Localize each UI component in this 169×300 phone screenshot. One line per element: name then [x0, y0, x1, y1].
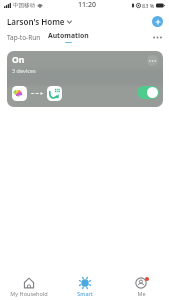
- button[interactable]: Tap-to-Run: [7, 33, 41, 42]
- staticText: On: [12, 54, 25, 66]
- staticText: Me: [137, 290, 146, 297]
- button[interactable]: Toggle automation: [137, 86, 159, 99]
- button[interactable]: Automation: [48, 31, 89, 43]
- staticText: 83 %: [142, 2, 155, 9]
- button[interactable]: Larson's Home: [7, 16, 72, 27]
- staticText: 中国移动: [13, 2, 35, 9]
- button[interactable]: Smart: [57, 277, 113, 300]
- staticText: Automation: [48, 31, 89, 40]
- button[interactable]: Add: [152, 16, 163, 27]
- button[interactable]: Card menu: [147, 55, 158, 66]
- staticText: Larson's Home: [7, 16, 65, 27]
- button[interactable]: Me: [113, 277, 169, 300]
- staticText: 11:20: [78, 0, 96, 10]
- staticText: My Household: [10, 290, 48, 297]
- staticText: Smart: [77, 290, 93, 297]
- staticText: Tap-to-Run: [7, 33, 41, 42]
- button[interactable]: More options: [150, 30, 164, 44]
- button[interactable]: My Household: [0, 277, 57, 300]
- button[interactable]: On: [7, 51, 163, 107]
- staticText: 3 devices: [12, 67, 36, 74]
